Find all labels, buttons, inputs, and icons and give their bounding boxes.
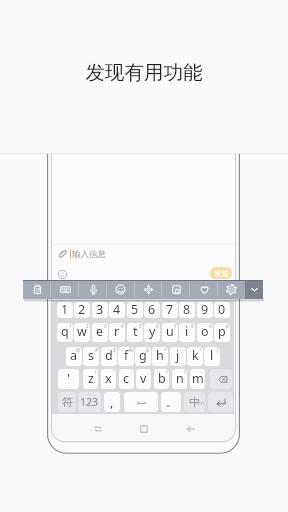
staticText: d [105,347,113,364]
button[interactable]: u [162,323,178,342]
button[interactable]: Keyboard [51,280,79,299]
button[interactable]: , [104,392,120,412]
staticText: 9 [209,323,212,329]
button[interactable]: e [92,323,108,342]
button[interactable]: f [118,347,134,366]
staticText: t [133,323,138,340]
staticText: % [129,347,133,353]
button[interactable]: Settings [217,280,245,299]
staticText: 。 [166,395,177,409]
button[interactable]: i [179,323,195,342]
button[interactable]: n [172,369,187,389]
staticText: : [131,369,133,375]
button[interactable]: d [101,347,117,366]
staticText: s [88,347,94,364]
staticText: ~ [201,369,204,375]
button[interactable] [52,245,234,263]
staticText: @ [76,347,81,353]
staticText: 5 [139,323,142,329]
button[interactable]: 。 [161,392,181,412]
button[interactable]: 4 [109,302,125,318]
button[interactable]: g [135,347,151,366]
staticText: 7 [174,323,177,329]
staticText: r [114,323,120,340]
button[interactable]: x [101,369,116,389]
button[interactable]: Clipboard [23,280,51,299]
button[interactable]: j [170,347,186,366]
button[interactable]: 8 [179,302,195,318]
button[interactable]: p [214,323,230,342]
button[interactable]: Recents [87,418,109,440]
button[interactable]: r [109,323,125,342]
button[interactable]: q [57,323,73,342]
button[interactable]: 中 [184,392,205,412]
button[interactable]: v [136,369,151,389]
staticText: n [176,370,184,387]
staticText: 0 [218,302,226,317]
button[interactable]: c [119,369,134,389]
staticText: q [61,323,69,340]
staticText: 输入信息 [72,249,106,260]
button[interactable]: w [74,323,90,342]
staticText: x [105,370,112,387]
button[interactable]: a [66,347,82,366]
button[interactable]: Emoji [58,270,67,279]
staticText: - [183,347,185,353]
staticText: 3 [104,323,107,329]
button[interactable]: o [197,323,213,342]
button[interactable]: s [83,347,99,366]
staticText: 2 [78,302,86,317]
staticText: c [123,370,130,387]
button[interactable]: m [190,369,205,389]
staticText: ; [148,369,150,375]
staticText: 中 [189,395,200,409]
button[interactable]: Move [134,280,162,299]
button[interactable]: Collapse [245,280,263,299]
button[interactable]: z [83,369,98,389]
button[interactable]: 2 [74,302,90,318]
staticText: " [113,369,115,375]
button[interactable]: 0 [214,302,230,318]
button[interactable] [208,392,233,412]
staticText: 9 [201,302,209,317]
button[interactable]: y [144,323,160,342]
staticText: ' [67,370,70,387]
button[interactable]: Emoji [106,280,134,299]
button[interactable]: 发送 [210,267,232,279]
button[interactable] [210,369,232,389]
button[interactable]: 7 [162,302,178,318]
button[interactable]: k [187,347,203,366]
staticText: 123 [80,395,99,409]
staticText: g [139,347,147,364]
button[interactable]: Home [133,418,155,440]
staticText: 4 [113,302,121,317]
button[interactable]: ' [58,369,79,389]
button[interactable]: t [127,323,143,342]
staticText: ! [95,369,97,375]
staticText: 6 [156,323,159,329]
staticText: z [88,370,94,387]
staticText: 2 [86,323,89,329]
button[interactable]: 5 [127,302,143,318]
button[interactable]: Save [162,280,190,299]
button[interactable]: 123 [78,392,101,412]
button[interactable]: Back [180,418,202,440]
staticText: 发送 [214,269,229,278]
button[interactable]: 9 [197,302,213,318]
button[interactable]: b [154,369,169,389]
button[interactable]: 符 [58,392,76,412]
button[interactable]: 6 [144,302,160,318]
staticText: , [110,394,114,411]
button[interactable]: l [204,347,220,366]
button[interactable]: 3 [92,302,108,318]
staticText: l [210,347,214,364]
button[interactable]: h [152,347,168,366]
staticText: 4 [121,323,124,329]
button[interactable]: Voice input [79,280,107,299]
staticText: u [166,323,174,340]
button[interactable] [124,392,158,412]
button[interactable]: Favorite [190,280,218,299]
button[interactable]: 1 [57,302,73,318]
staticText: 6 [148,302,156,317]
staticText: p [218,323,226,340]
